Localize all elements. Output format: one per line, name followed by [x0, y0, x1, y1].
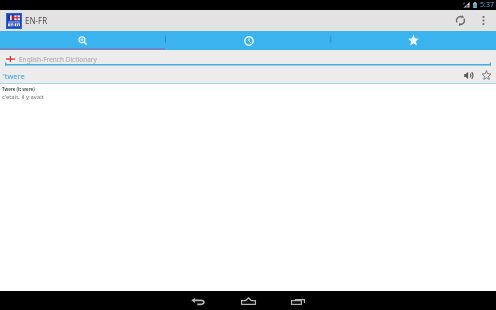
button[interactable]: Refresh: [447, 10, 473, 31]
button[interactable]: Home: [223, 291, 273, 310]
button[interactable]: Favourites: [331, 31, 496, 50]
button[interactable]: Pronounce: [459, 66, 477, 84]
button[interactable]: Search: [0, 31, 166, 50]
staticText: EN-FR: [25, 15, 48, 26]
button[interactable]: More options: [473, 10, 493, 31]
button[interactable]: Recent apps: [273, 291, 323, 310]
button[interactable]: Add to favourites: [477, 66, 495, 84]
button[interactable]: 'twere: [0, 66, 496, 84]
staticText: 'twere: [3, 71, 25, 81]
staticText: Twere (it were): [2, 86, 35, 92]
staticText: 5:37: [480, 0, 494, 10]
button[interactable]: English-French Dictionary: [0, 50, 496, 66]
staticText: English-French Dictionary: [19, 55, 97, 64]
button[interactable]: Back: [173, 291, 223, 310]
staticText: c'etait, il y avait: [2, 93, 44, 101]
button[interactable]: History: [166, 31, 331, 50]
